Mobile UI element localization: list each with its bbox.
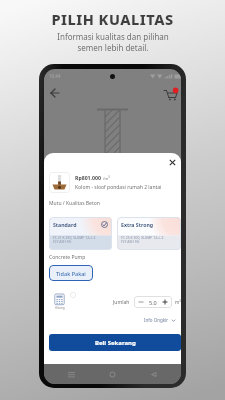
staticText: m³ — [175, 299, 181, 305]
button[interactable]: Back — [149, 370, 158, 379]
staticText: FC 25 K 300, SLUMP 12+/-2 FLY ASH 5% — [121, 235, 164, 244]
staticText: Info Ongkir — [144, 317, 169, 323]
button[interactable]: Home — [108, 370, 117, 379]
staticText: Rp801.000 — [75, 174, 101, 181]
staticText: Informasi kualitas dan pilihan semen leb… — [57, 31, 169, 53]
staticText: Mutu / Kualitas Beton — [49, 200, 100, 207]
staticText: FC 21 K 250, SLUMP 12+/-2 FLY ASH 5% — [53, 235, 96, 244]
button[interactable]: Recent apps — [67, 370, 76, 379]
staticText: PILIH KUALITAS — [51, 9, 174, 29]
button[interactable]: Extra Strong — [117, 217, 181, 250]
button[interactable]: Back — [48, 86, 62, 100]
staticText: 10.44 — [49, 73, 61, 79]
button[interactable]: Cart — [163, 86, 178, 101]
staticText: /m³ — [103, 176, 110, 181]
button[interactable]: Tambah — [162, 299, 168, 305]
button[interactable]: Beli Sekarang — [49, 334, 181, 351]
staticText: Jumlah — [113, 299, 130, 306]
button[interactable]: Tidak Pakai — [49, 265, 93, 281]
button[interactable]: Standard — [49, 217, 112, 250]
staticText: Kolom - sloof pondasi rumah 2 lantai — [75, 184, 162, 191]
button[interactable]: Kurangi — [138, 299, 144, 305]
staticText: Extra Strong — [121, 221, 154, 228]
staticText: Beli Sekarang — [95, 339, 136, 347]
button[interactable]: Tutup — [168, 158, 177, 167]
staticText: Hitung — [55, 306, 65, 310]
staticText: Tidak Pakai — [56, 270, 86, 277]
staticText: Standard — [53, 221, 77, 228]
button[interactable]: Hitung kebutuhan — [49, 291, 70, 312]
staticText: Concrete Pump — [49, 254, 86, 261]
staticText: 5.0 — [149, 299, 157, 306]
button[interactable]: Info Ongkir — [144, 317, 176, 323]
